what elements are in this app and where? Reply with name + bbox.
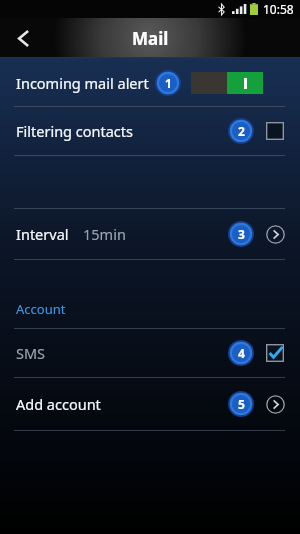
staticText: 5 [238,396,245,412]
staticText: 10:58 [263,1,294,17]
button[interactable]: Incoming mail alert on [191,72,263,94]
staticText: SMS [16,343,46,363]
staticText: 3 [238,226,245,242]
button[interactable]: SMS [0,329,300,377]
button[interactable]: Open [264,223,286,245]
staticText: Account [16,300,66,318]
button[interactable]: Back [0,18,46,58]
staticText: Mail [132,27,169,50]
staticText: Filtering contacts [16,121,133,141]
staticText: Add account [16,394,101,414]
staticText: Interval [16,224,69,244]
button[interactable]: Interval [0,209,300,259]
button[interactable]: Unchecked [264,120,286,142]
button[interactable]: Filtering contacts [0,107,300,155]
staticText: 2 [238,123,245,139]
staticText: 4 [238,345,245,361]
staticText: 1 [165,75,172,91]
button[interactable]: Open [264,393,286,415]
button[interactable]: Add account [0,378,300,430]
button[interactable]: Incoming mail alert [0,60,300,106]
staticText: Incoming mail alert [16,73,149,93]
button[interactable]: Checked [264,342,286,364]
staticText: 15min [83,224,126,244]
